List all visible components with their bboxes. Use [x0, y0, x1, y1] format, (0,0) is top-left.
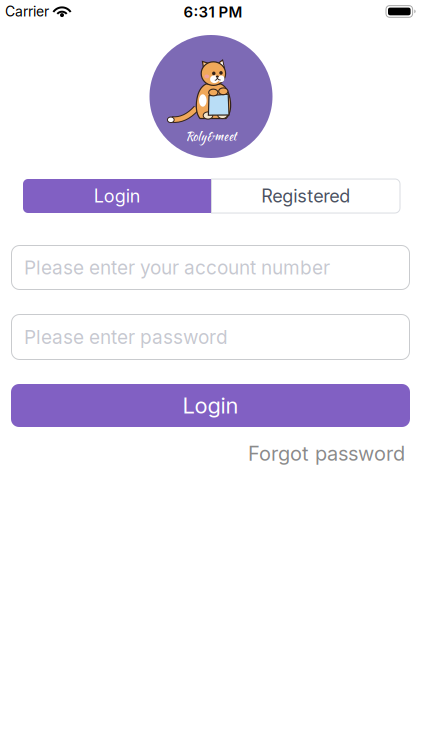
- button[interactable]: Login: [11, 384, 410, 427]
- staticText: Forgot password: [248, 441, 405, 466]
- staticText: Roly&meet: [185, 128, 236, 145]
- button[interactable]: Login: [23, 179, 211, 213]
- button[interactable]: Please enter your account number: [11, 245, 410, 290]
- staticText: Login: [182, 392, 238, 419]
- staticText: 6:31 PM: [183, 3, 242, 21]
- staticText: Login: [94, 185, 141, 207]
- button[interactable]: Forgot password: [248, 441, 405, 466]
- button[interactable]: Registered: [211, 179, 400, 213]
- staticText: Registered: [261, 185, 350, 207]
- button[interactable]: Please enter password: [11, 314, 410, 360]
- staticText: Please enter your account number: [24, 256, 330, 279]
- staticText: Please enter password: [24, 325, 228, 348]
- staticText: Carrier: [5, 3, 49, 20]
